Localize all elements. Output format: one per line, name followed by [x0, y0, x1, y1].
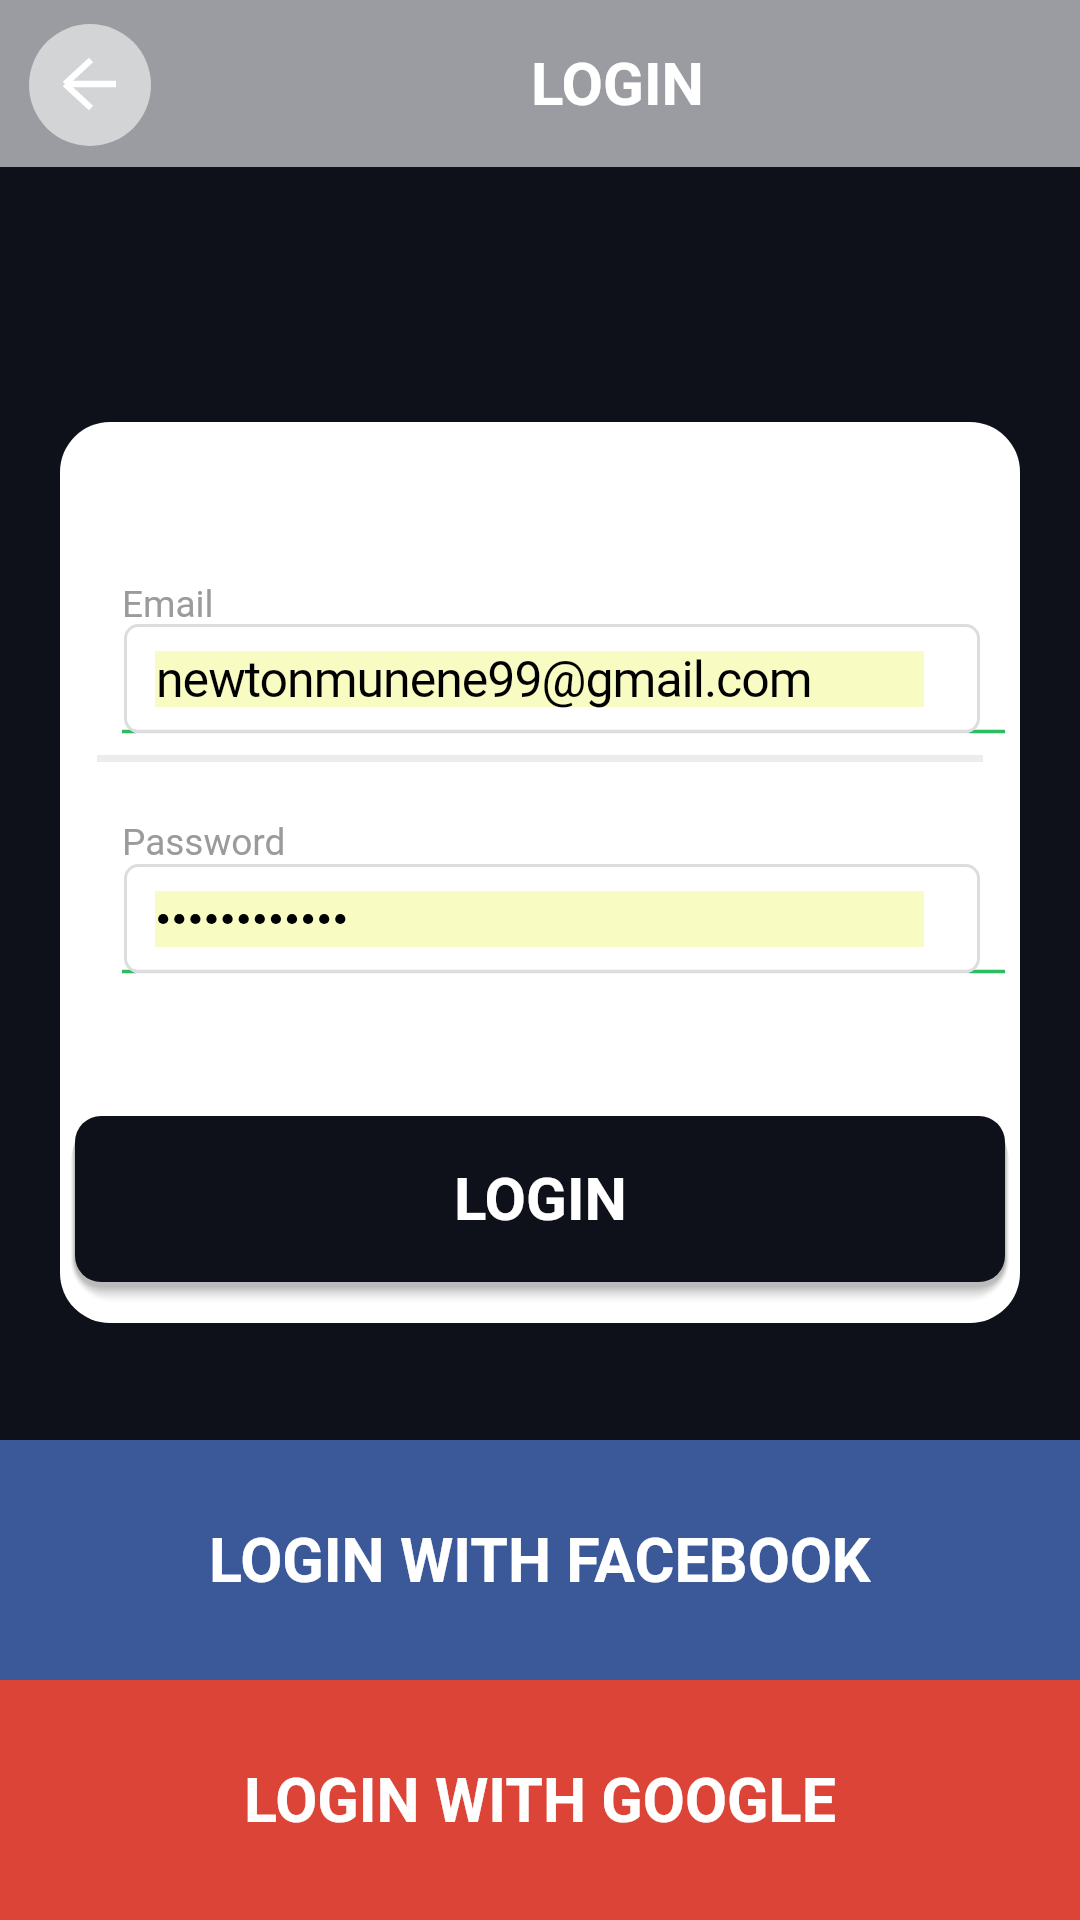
staticText: newtonmunene99@gmail.com — [156, 651, 812, 710]
button[interactable]: Back — [29, 24, 151, 146]
button[interactable]: LOGIN WITH GOOGLE — [0, 1680, 1080, 1920]
staticText: LOGIN — [454, 1164, 627, 1234]
button[interactable]: LOGIN — [75, 1116, 1005, 1282]
button[interactable]: LOGIN WITH FACEBOOK — [0, 1440, 1080, 1680]
staticText: LOGIN — [531, 49, 704, 119]
staticText: Password — [122, 821, 286, 864]
staticText: LOGIN WITH GOOGLE — [244, 1765, 836, 1836]
staticText: LOGIN WITH FACEBOOK — [209, 1525, 871, 1596]
button[interactable] — [122, 864, 1007, 978]
button[interactable]: newtonmunene99@gmail.com — [122, 624, 1007, 738]
staticText: Email — [122, 583, 214, 626]
